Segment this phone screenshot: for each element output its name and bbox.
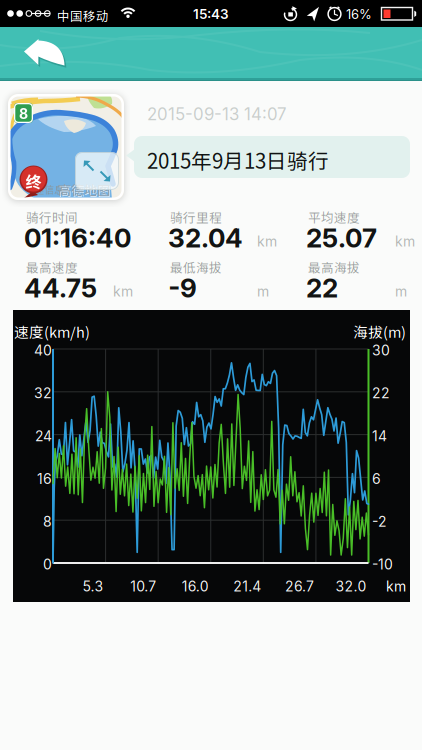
staticText: m (257, 283, 269, 300)
staticText: -10 (372, 556, 393, 573)
staticText: 速度(km/h) (14, 321, 90, 342)
staticText: 25.07 (306, 222, 377, 254)
staticText: 8 (43, 513, 52, 530)
staticText: 骑行里程 (170, 208, 222, 226)
staticText: 8 (19, 105, 28, 122)
staticText: 16% (346, 6, 372, 22)
staticText: 40 (34, 342, 52, 359)
staticText: -9 (168, 272, 197, 304)
staticText: 骑行时间 (26, 208, 78, 226)
staticText: 14 (372, 428, 387, 444)
staticText: 2015年9月13日骑行 (147, 145, 329, 175)
staticText: 26.7 (285, 578, 314, 595)
staticText: 44.75 (24, 272, 97, 304)
button[interactable]: Back (14, 34, 422, 750)
staticText: 32.04 (168, 222, 243, 254)
staticText: km (386, 578, 406, 595)
staticText: 0 (43, 556, 52, 573)
staticText: 5.3 (83, 578, 104, 595)
staticText: 中国移动 (57, 6, 109, 25)
staticText: 30 (372, 342, 390, 359)
staticText: 22 (372, 385, 390, 402)
staticText: -2 (372, 513, 387, 530)
staticText: 高德地图 (58, 180, 110, 199)
staticText: 32.0 (335, 578, 366, 595)
staticText: 建信息 (34, 182, 64, 196)
staticText: 平均速度 (308, 208, 360, 226)
staticText: 24 (35, 428, 52, 444)
staticText: 2015-09-13 14:07 (147, 104, 287, 124)
staticText: 21.4 (233, 578, 261, 595)
staticText: 最高速度 (26, 258, 78, 276)
button[interactable]: 查看骑行轨迹地图 (8, 94, 124, 200)
staticText: 15:43 (193, 6, 229, 22)
staticText: km (113, 283, 133, 300)
staticText: 22 (306, 272, 338, 304)
staticText: 终 (25, 169, 41, 193)
staticText: km (395, 233, 415, 250)
staticText: 01:16:40 (24, 222, 131, 254)
staticText: 最高海拔 (308, 258, 360, 276)
staticText: 最低海拔 (170, 258, 222, 276)
staticText: 高德地图 (59, 181, 111, 200)
staticText: m (395, 283, 407, 300)
staticText: 16 (37, 470, 52, 487)
staticText: 10.7 (130, 578, 156, 595)
staticText: 16.0 (182, 578, 209, 595)
staticText: 32 (34, 385, 52, 402)
staticText: 海拔(m) (353, 321, 406, 342)
staticText: 6 (372, 470, 381, 487)
staticText: km (257, 233, 277, 250)
